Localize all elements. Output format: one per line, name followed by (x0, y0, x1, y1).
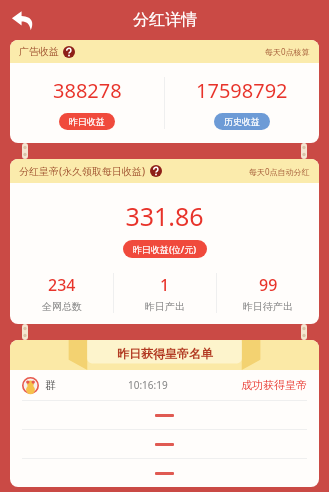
button[interactable]: 388278 (10, 63, 164, 143)
staticText: 10:16:19 (128, 378, 168, 392)
staticText: 分红详情 (133, 10, 197, 30)
button[interactable]: 昨日收益(位/元) (123, 240, 207, 258)
staticText: 广告收益 (19, 45, 59, 58)
staticText: 每天0点核算 (265, 46, 310, 57)
button[interactable]: 17598792 (165, 63, 319, 143)
button[interactable]: 群 (10, 370, 319, 400)
button[interactable] (10, 430, 319, 458)
button[interactable]: 历史收益 (214, 113, 270, 130)
staticText: 234 (48, 274, 76, 296)
staticText: 分红皇帝(永久领取每日收益) (19, 164, 146, 178)
staticText: 99 (259, 274, 278, 296)
button[interactable]: 99 (217, 270, 319, 316)
staticText: 昨日收益 (69, 116, 105, 127)
staticText: 全网总数 (42, 300, 82, 313)
button[interactable] (10, 401, 319, 429)
staticText: 昨日待产出 (243, 300, 293, 313)
staticText: 昨日获得皇帝名单 (117, 346, 213, 361)
staticText: 1 (160, 274, 170, 296)
staticText: 331.86 (10, 199, 319, 233)
staticText: 17598792 (196, 77, 288, 104)
staticText: 成功获得皇帝 (241, 378, 307, 392)
staticText: 昨日收益(位/元) (133, 243, 197, 255)
staticText: 昨日产出 (145, 300, 185, 313)
button[interactable]: 234 (10, 270, 113, 316)
staticText: 388278 (53, 77, 122, 104)
staticText: 群 (45, 378, 56, 392)
button[interactable] (10, 459, 319, 487)
button[interactable]: Back (6, 4, 38, 36)
button[interactable]: 1 (114, 270, 216, 316)
button[interactable]: 昨日收益 (59, 113, 115, 130)
staticText: 历史收益 (224, 116, 260, 127)
staticText: 每天0点自动分红 (249, 166, 310, 177)
